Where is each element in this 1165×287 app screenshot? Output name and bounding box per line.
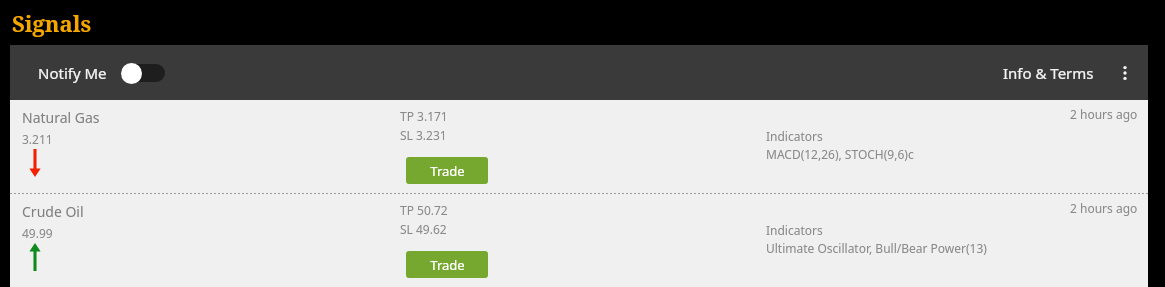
- staticText: 49.99: [22, 225, 53, 241]
- staticText: Signals: [12, 8, 92, 38]
- button[interactable]: Notify Me: [30, 56, 173, 90]
- staticText: Ultimate Oscillator, Bull/Bear Power(13): [766, 240, 987, 256]
- staticText: Trade: [430, 256, 465, 274]
- button[interactable]: Natural Gas: [10, 100, 1148, 193]
- button[interactable]: More options: [1108, 56, 1142, 90]
- button[interactable]: Trade: [406, 251, 488, 278]
- other: Buy signal: [28, 243, 42, 271]
- staticText: Trade: [430, 162, 465, 180]
- staticText: 2 hours ago: [1070, 200, 1138, 216]
- staticText: MACD(12,26), STOCH(9,6)c: [766, 146, 914, 162]
- staticText: Indicators: [766, 128, 823, 144]
- button[interactable]: Crude Oil: [10, 194, 1148, 287]
- button[interactable]: Info & Terms: [995, 55, 1102, 91]
- staticText: SL 3.231: [400, 127, 447, 143]
- staticText: Notify Me: [38, 63, 107, 83]
- staticText: Indicators: [766, 222, 823, 238]
- staticText: Info & Terms: [1003, 63, 1094, 83]
- staticText: TP 50.72: [400, 202, 448, 218]
- button[interactable]: Notify Me toggle: [121, 62, 165, 84]
- staticText: 2 hours ago: [1070, 106, 1138, 122]
- staticText: SL 49.62: [400, 221, 447, 237]
- staticText: TP 3.171: [400, 108, 448, 124]
- staticText: 3.211: [22, 131, 53, 147]
- other: Sell signal: [28, 149, 42, 177]
- button[interactable]: Trade: [406, 157, 488, 184]
- staticText: Crude Oil: [22, 202, 84, 221]
- staticText: Natural Gas: [22, 108, 100, 127]
